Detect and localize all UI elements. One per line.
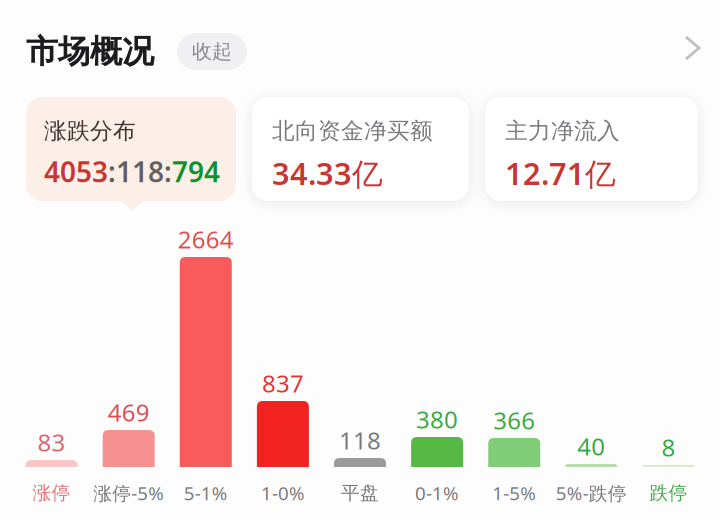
staticText: 12.71亿 [505,153,616,193]
button[interactable]: 主力净流入 [485,97,698,201]
staticText: 34.33亿 [272,153,383,193]
staticText: 市场概况 [26,32,154,71]
staticText: 40 [577,430,605,462]
staticText: 跌停 [649,481,687,504]
staticText: 涨停 [33,481,71,504]
button[interactable]: 北向资金净买额 [252,97,469,201]
staticText: 平盘 [341,481,379,504]
staticText: 主力净流入 [505,117,620,145]
staticText: :118: [108,153,172,190]
staticText: 83 [38,426,66,458]
button[interactable]: 涨跌分布 [26,97,236,201]
staticText: 469 [108,396,150,428]
staticText: 1-0% [261,481,305,505]
staticText: 366 [493,404,535,436]
staticText: 5%-跌停 [556,481,627,505]
staticText: 794 [172,153,220,190]
button[interactable]: 收起 [177,33,247,70]
staticText: 837 [262,367,304,399]
staticText: 收起 [192,39,232,64]
staticText: 1-5% [492,481,536,505]
staticText: 2664 [178,223,234,255]
staticText: 380 [416,403,458,435]
staticText: 5-1% [184,481,228,505]
staticText: 涨停-5% [93,481,164,505]
staticText: 涨跌分布 [44,117,136,145]
staticText: 北向资金净买额 [272,117,433,145]
button[interactable]: 展开详情 [672,23,713,73]
staticText: 0-1% [415,481,459,505]
staticText: 4053 [44,153,108,190]
staticText: 118 [339,424,381,456]
staticText: 8 [661,431,675,463]
